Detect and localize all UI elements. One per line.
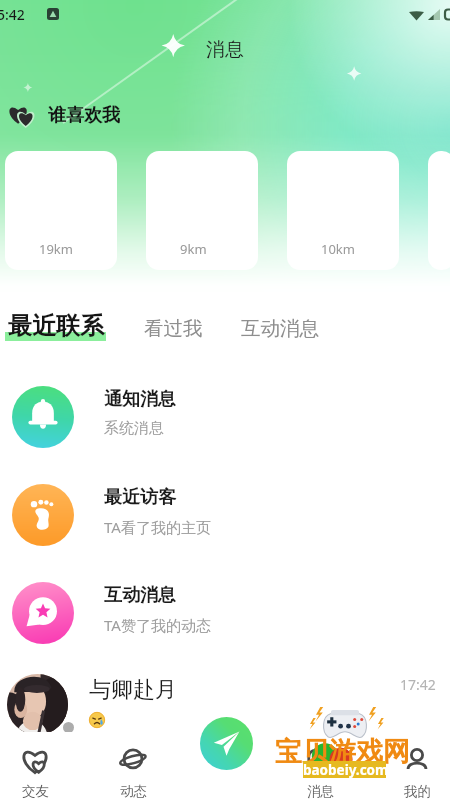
button[interactable]: 互动消息 bbox=[241, 316, 319, 344]
staticText: baobeiy.com bbox=[303, 761, 386, 778]
staticText: 与卿赴月 bbox=[89, 676, 177, 704]
staticText: 9km bbox=[180, 240, 207, 258]
button[interactable]: 最近联系 bbox=[8, 311, 109, 344]
button[interactable]: 与卿赴月 bbox=[0, 662, 450, 746]
button[interactable]: 看过我 bbox=[144, 316, 203, 344]
staticText: 动态 bbox=[120, 783, 147, 800]
staticText: 互动消息 bbox=[241, 316, 319, 341]
staticText: 17:42 bbox=[400, 675, 436, 694]
staticText: 谁喜欢我 bbox=[48, 104, 120, 127]
staticText: 10km bbox=[321, 240, 355, 258]
button[interactable]: Send message bbox=[200, 717, 253, 770]
staticText: 最近访客 bbox=[104, 486, 176, 509]
staticText: 系统消息 bbox=[104, 419, 164, 438]
staticText: 宝贝游戏网 bbox=[275, 735, 410, 769]
staticText: 19km bbox=[39, 240, 73, 258]
staticText: 消息 bbox=[307, 783, 334, 800]
staticText: 最近联系 bbox=[8, 311, 104, 341]
button[interactable]: 动态 bbox=[91, 720, 175, 800]
staticText: 消息 bbox=[206, 38, 244, 62]
button[interactable]: 10km bbox=[287, 151, 399, 270]
button[interactable]: 我的 bbox=[375, 720, 450, 800]
staticText: 我的 bbox=[404, 783, 431, 800]
button[interactable]: 最近访客 bbox=[0, 466, 450, 564]
button[interactable]: 谁喜欢我 bbox=[8, 100, 120, 130]
staticText: 看过我 bbox=[144, 316, 203, 341]
button[interactable]: 消息 bbox=[278, 720, 362, 800]
staticText: 通知消息 bbox=[104, 388, 176, 411]
staticText: TA看了我的主页 bbox=[104, 517, 211, 537]
staticText: 互动消息 bbox=[104, 584, 176, 607]
button[interactable]: 9km bbox=[146, 151, 258, 270]
staticText: 交友 bbox=[22, 783, 49, 800]
button[interactable]: 交友 bbox=[0, 720, 77, 800]
button[interactable]: 通知消息 bbox=[0, 368, 450, 466]
staticText: 5:42 bbox=[0, 5, 25, 24]
button[interactable]: 19km bbox=[5, 151, 117, 270]
button[interactable]: 互动消息 bbox=[0, 564, 450, 662]
button[interactable] bbox=[428, 151, 450, 270]
staticText: TA赞了我的动态 bbox=[104, 615, 211, 635]
